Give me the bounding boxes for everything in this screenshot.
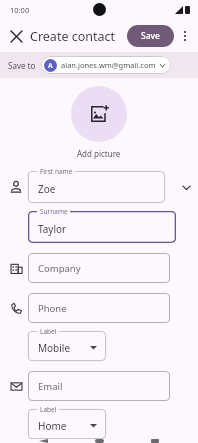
staticText: A [48,61,53,71]
button[interactable]: Label [28,409,106,439]
staticText: Company [38,262,81,275]
button[interactable]: Add picture [71,86,127,142]
button[interactable]: Home [86,439,112,443]
button[interactable]: Expand name fields [176,171,196,203]
staticText: Label [40,405,57,414]
staticText: Surname [40,207,68,216]
staticText: Create contact [30,28,116,45]
button[interactable]: Phone [28,293,170,323]
staticText: Save [141,30,160,42]
staticText: alan.jones.wm@gmail.com [61,60,156,70]
button[interactable]: Save [127,25,174,47]
staticText: 10:00 [10,5,30,15]
button[interactable]: Label [28,331,106,361]
staticText: Label [40,327,57,336]
button[interactable]: More options [175,26,195,46]
staticText: Zoe [38,182,56,196]
button[interactable]: A [41,56,171,74]
staticText: Phone [38,302,67,315]
staticText: Mobile [38,341,71,355]
staticText: First name [40,167,73,176]
button[interactable]: Surname [28,211,176,243]
button[interactable]: First name [28,171,165,203]
button[interactable]: Company [28,253,170,283]
button[interactable]: Back [30,439,56,443]
staticText: Add picture [77,148,121,159]
button[interactable]: Recent apps [142,439,168,443]
staticText: Taylor [38,222,67,236]
staticText: Save to [8,60,36,71]
button[interactable]: Close [4,24,28,48]
button[interactable]: Email [28,371,170,401]
staticText: Email [38,380,63,393]
staticText: Home [38,419,67,433]
